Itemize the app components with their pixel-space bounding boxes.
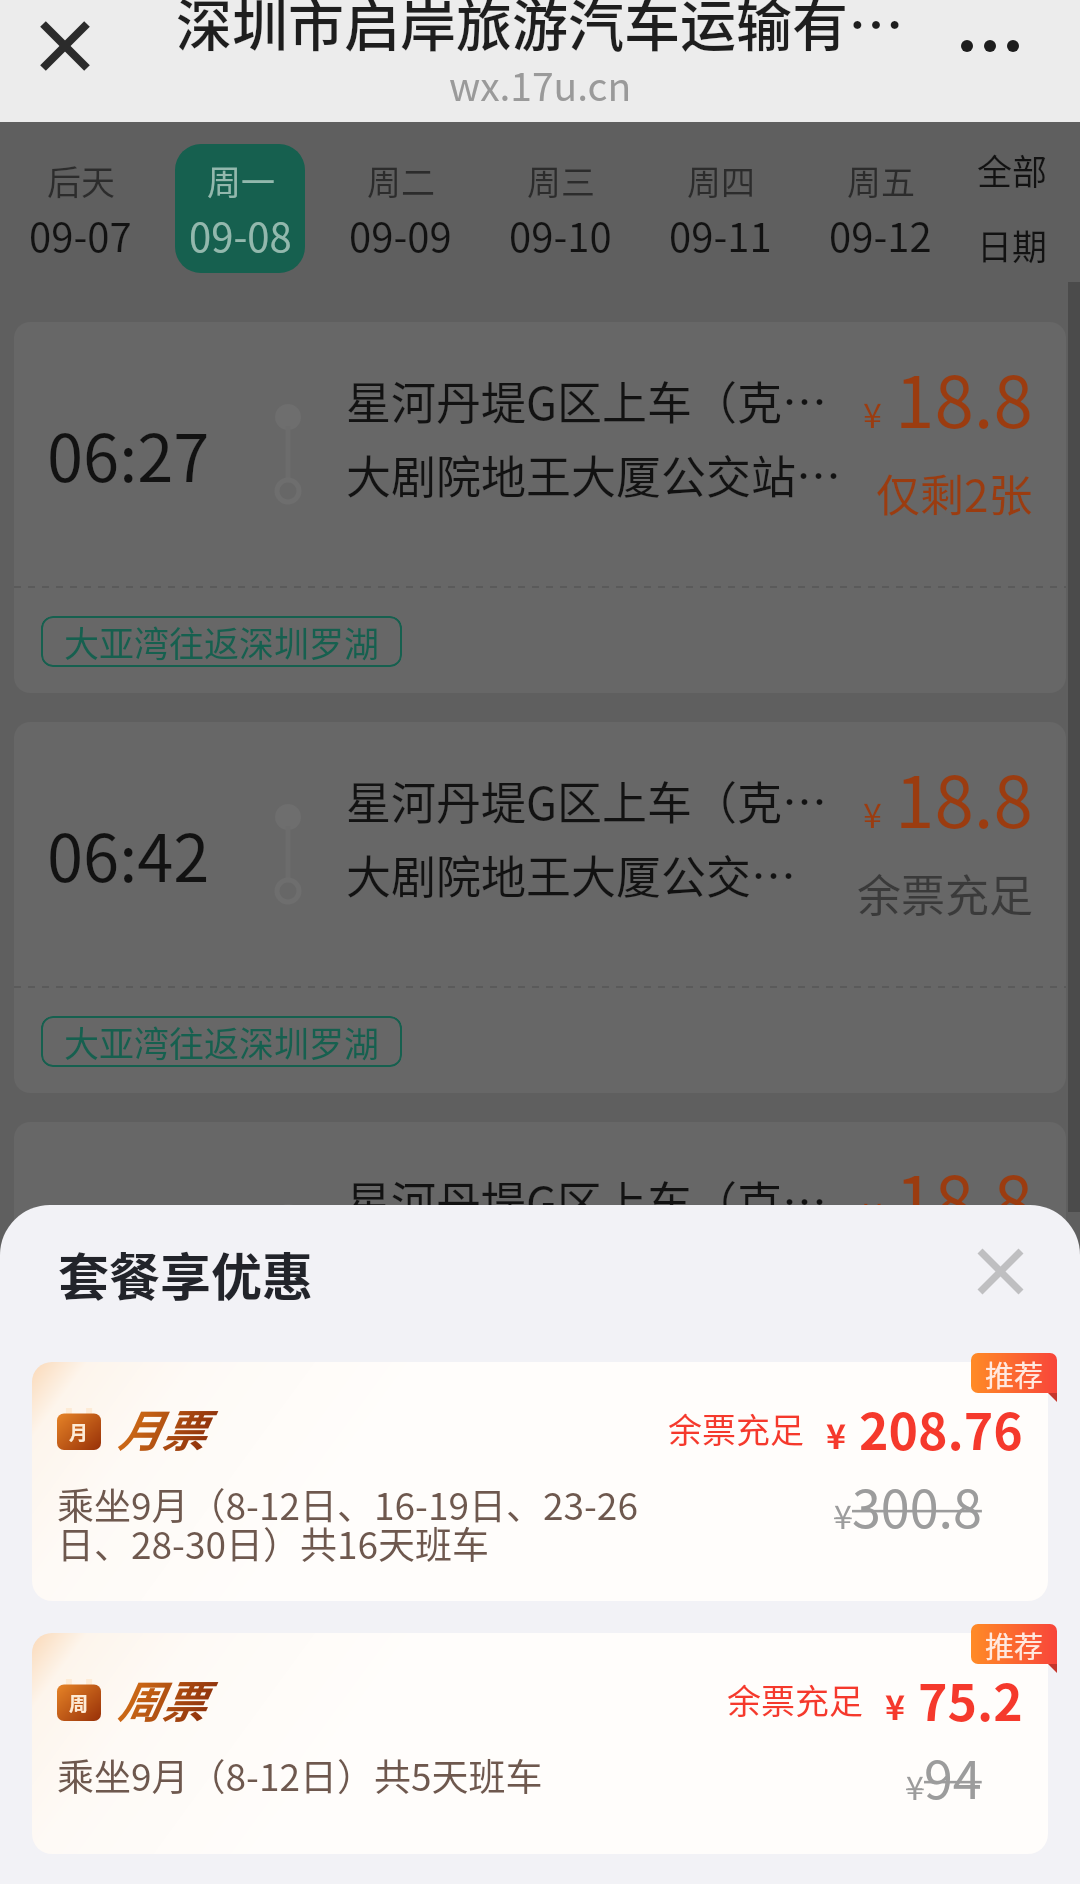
staticText: wx.17u.cn [449,56,632,112]
staticText: 18.8 [895,746,1033,849]
staticText: 月 [69,1418,89,1446]
button[interactable]: 大亚湾往返深圳罗湖 [41,1416,402,1467]
staticText: 09-07 [29,206,132,264]
staticText: 余票充足 [727,1675,863,1724]
staticText: ¥ [863,789,882,838]
staticText: 后天 [47,156,115,205]
staticText: 余票充足 [857,1261,1033,1325]
button[interactable]: 周一 [175,144,305,273]
staticText: ¥ [885,1681,906,1730]
staticText: 18.8 [895,346,1033,449]
button[interactable]: 大亚湾往返深圳罗湖 [41,1016,402,1067]
staticText: 月票 [117,1396,205,1460]
staticText: ¥ [863,1189,882,1238]
staticText: 全部 [977,144,1048,195]
staticText: 周一 [207,156,275,205]
staticText: 推荐 [985,1624,1044,1664]
button[interactable]: 周四 [655,144,785,273]
staticText: 06:42 [47,807,210,901]
staticText: 周四 [687,156,755,205]
button[interactable]: 月 [32,1362,1048,1601]
staticText: 星河丹堤G区上车（克… [346,368,828,433]
staticText: 周 [69,1689,89,1717]
button[interactable]: 06:58 [14,1122,1066,1493]
staticText: 09-08 [189,206,292,264]
staticText: 乘坐9月（8-12日）共5天班车 [57,1748,906,1802]
button[interactable]: 周五 [815,144,945,273]
staticText: 06:58 [47,1207,210,1301]
staticText: 大亚湾往返深圳罗湖 [64,1016,380,1067]
button[interactable]: 后天 [15,144,145,273]
staticText: 09-10 [509,206,612,264]
staticText: 94 [924,1739,982,1814]
staticText: 周三 [527,156,595,205]
button[interactable]: 大亚湾往返深圳罗湖 [41,616,402,667]
staticText: 周票 [117,1667,205,1731]
staticText: 75.2 [918,1663,1023,1735]
staticText: 大剧院地王大厦公交… [346,842,797,907]
staticText: ¥ [863,389,882,438]
staticText: 300.8 [852,1468,982,1543]
staticText: 星河丹堤G区上车（克… [346,768,828,833]
button[interactable]: 周 [32,1633,1048,1854]
staticText: 06:27 [47,407,210,501]
staticText: 18.8 [895,1146,1033,1249]
staticText: 星河丹堤G区上车（克… [346,1168,828,1233]
staticText: 余票充足 [668,1404,804,1453]
staticText: 208.76 [859,1392,1023,1464]
staticText: 日期 [977,219,1048,270]
button[interactable]: More options [944,0,1036,92]
staticText: 大亚湾往返深圳罗湖 [64,616,380,667]
staticText: 套餐享优惠 [58,1237,314,1311]
staticText: 大亚湾往返深圳罗湖 [64,1416,380,1467]
staticText: ¥ [826,1410,847,1459]
staticText: ¥ [906,1763,924,1809]
staticText: 余票充足 [857,861,1033,925]
button[interactable]: 周二 [335,144,465,273]
staticText: 周五 [847,156,915,205]
staticText: 09-11 [669,206,772,264]
staticText: 周二 [367,156,435,205]
staticText: 乘坐9月（8-12日、16-19日、23-26 日、28-30日）共16天班车 [57,1477,834,1570]
staticText: 仅剩2张 [876,461,1033,525]
button[interactable]: 周三 [495,144,625,273]
staticText: ¥ [834,1492,852,1538]
button[interactable]: 全部 [945,122,1080,282]
staticText: 深圳市启岸旅游汽车运输有… [176,0,904,62]
staticText: 09-12 [829,206,932,264]
button[interactable]: 关闭 [954,1225,1046,1317]
staticText: 大剧院地王大厦公交站… [346,442,842,507]
button[interactable]: Close [19,0,111,92]
staticText: 推荐 [985,1353,1044,1393]
staticText: 09-09 [349,206,452,264]
button[interactable]: 06:42 [14,722,1066,1093]
button[interactable]: 06:27 [14,322,1066,693]
